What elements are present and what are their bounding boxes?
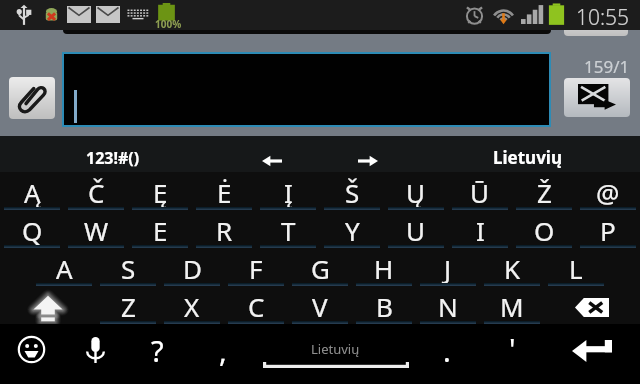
staticText: . bbox=[443, 331, 451, 370]
staticText: H bbox=[374, 251, 394, 286]
button[interactable]: Backspace bbox=[544, 286, 640, 324]
staticText: Y bbox=[345, 213, 360, 248]
staticText: O bbox=[534, 213, 555, 248]
button[interactable]: Ž bbox=[512, 172, 576, 210]
staticText: Lietuvių bbox=[311, 340, 360, 358]
button[interactable]: , bbox=[192, 324, 256, 384]
staticText: 10:55 bbox=[576, 3, 630, 32]
button[interactable]: Z bbox=[96, 286, 160, 324]
button[interactable]: Č bbox=[64, 172, 128, 210]
button[interactable]: P bbox=[576, 210, 640, 248]
button[interactable]: K bbox=[480, 248, 544, 286]
button[interactable]: Move cursor right bbox=[342, 136, 394, 172]
button[interactable]: Ė bbox=[192, 172, 256, 210]
staticText: ? bbox=[151, 331, 164, 370]
staticText: D bbox=[183, 251, 202, 286]
staticText: F bbox=[249, 251, 263, 286]
button[interactable]: Ū bbox=[448, 172, 512, 210]
staticText: Ė bbox=[217, 175, 232, 210]
staticText: I bbox=[476, 213, 485, 248]
button[interactable]: Move cursor left bbox=[246, 136, 298, 172]
button[interactable]: L bbox=[544, 248, 608, 286]
button[interactable]: Ą bbox=[0, 172, 64, 210]
button[interactable]: I bbox=[448, 210, 512, 248]
staticText: T bbox=[281, 213, 296, 248]
staticText: W bbox=[84, 213, 109, 248]
staticText: , bbox=[219, 331, 227, 370]
button[interactable]: Q bbox=[0, 210, 64, 248]
button[interactable]: N bbox=[416, 286, 480, 324]
staticText: ' bbox=[509, 329, 516, 368]
button[interactable]: Lietuvių bbox=[256, 324, 416, 384]
button[interactable]: J bbox=[416, 248, 480, 286]
button[interactable]: R bbox=[192, 210, 256, 248]
staticText: Ą bbox=[24, 175, 41, 210]
button[interactable]: Send message bbox=[564, 78, 630, 117]
button[interactable]: F bbox=[224, 248, 288, 286]
button[interactable]: Ę bbox=[128, 172, 192, 210]
staticText: L bbox=[569, 251, 583, 286]
button[interactable]: X bbox=[160, 286, 224, 324]
button[interactable]: B bbox=[352, 286, 416, 324]
button[interactable]: Š bbox=[320, 172, 384, 210]
button[interactable] bbox=[64, 54, 549, 125]
staticText: A bbox=[56, 251, 73, 286]
staticText: 100% bbox=[155, 17, 182, 31]
staticText: Lietuvių bbox=[493, 146, 563, 169]
staticText: Š bbox=[345, 175, 360, 210]
button[interactable]: Ų bbox=[384, 172, 448, 210]
staticText: M bbox=[500, 289, 524, 324]
staticText: X bbox=[184, 289, 200, 324]
button[interactable]: Lietuvių bbox=[478, 136, 578, 172]
staticText: 123!#() bbox=[86, 147, 140, 169]
button[interactable]: H bbox=[352, 248, 416, 286]
staticText: Ų bbox=[406, 175, 426, 210]
button[interactable]: D bbox=[160, 248, 224, 286]
staticText: V bbox=[312, 289, 328, 324]
button[interactable]: S bbox=[96, 248, 160, 286]
button[interactable] bbox=[63, 14, 551, 34]
button[interactable]: T bbox=[256, 210, 320, 248]
button[interactable]: Enter bbox=[544, 324, 640, 384]
staticText: J bbox=[444, 251, 452, 286]
staticText: N bbox=[438, 289, 458, 324]
staticText: Z bbox=[121, 289, 136, 324]
staticText: C bbox=[248, 289, 265, 324]
button[interactable]: O bbox=[512, 210, 576, 248]
button[interactable]: A bbox=[32, 248, 96, 286]
button[interactable]: C bbox=[224, 286, 288, 324]
button[interactable]: 123!#() bbox=[58, 136, 168, 172]
staticText: U bbox=[406, 213, 426, 248]
staticText: G bbox=[311, 251, 330, 286]
button[interactable]: Attach bbox=[9, 77, 55, 119]
staticText: Č bbox=[88, 175, 105, 210]
button[interactable]: ' bbox=[480, 324, 544, 384]
button[interactable]: Shift bbox=[0, 286, 96, 324]
button[interactable]: V bbox=[288, 286, 352, 324]
staticText: E bbox=[153, 213, 168, 248]
staticText: K bbox=[504, 251, 521, 286]
button[interactable]: G bbox=[288, 248, 352, 286]
button[interactable]: Voice input bbox=[64, 324, 128, 384]
staticText: B bbox=[376, 289, 393, 324]
button[interactable]: Emoji bbox=[0, 324, 64, 384]
staticText: P bbox=[600, 213, 616, 248]
button[interactable]: Contacts bbox=[564, 14, 628, 36]
button[interactable]: Į bbox=[256, 172, 320, 210]
staticText: Į bbox=[284, 175, 293, 210]
button[interactable]: W bbox=[64, 210, 128, 248]
staticText: R bbox=[216, 213, 233, 248]
staticText: S bbox=[121, 251, 136, 286]
button[interactable]: @ bbox=[576, 172, 640, 210]
button[interactable]: U bbox=[384, 210, 448, 248]
button[interactable]: . bbox=[416, 324, 480, 384]
staticText: Ę bbox=[153, 175, 168, 210]
staticText: Q bbox=[22, 213, 43, 248]
button[interactable]: Y bbox=[320, 210, 384, 248]
button[interactable]: E bbox=[128, 210, 192, 248]
staticText: @ bbox=[596, 175, 620, 210]
button[interactable]: M bbox=[480, 286, 544, 324]
staticText: Ž bbox=[537, 175, 552, 210]
button[interactable]: ? bbox=[128, 324, 192, 384]
staticText: Ū bbox=[470, 175, 490, 210]
